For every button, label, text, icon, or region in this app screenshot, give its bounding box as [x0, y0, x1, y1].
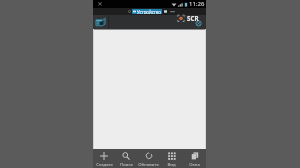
button[interactable]: Storage [93, 15, 108, 29]
button[interactable]: Окна [183, 149, 206, 168]
button[interactable]: Вид [160, 149, 183, 168]
staticText: Устройство [137, 9, 161, 14]
staticText: Вид [167, 161, 176, 167]
button[interactable]: Обновить [137, 149, 160, 168]
button[interactable]: Создать [93, 149, 115, 168]
button[interactable]: Устройство [132, 9, 162, 14]
staticText: 11:26 [189, 0, 205, 8]
button[interactable]: Поиск [115, 149, 137, 168]
staticText: SCR [187, 14, 199, 22]
staticText: Поиск [120, 161, 133, 167]
staticText: Окна [189, 161, 200, 167]
staticText: Создать [96, 161, 113, 167]
staticText: Обновить [138, 161, 159, 167]
button[interactable] [109, 15, 206, 29]
button[interactable]: Screen recorder [178, 14, 200, 27]
